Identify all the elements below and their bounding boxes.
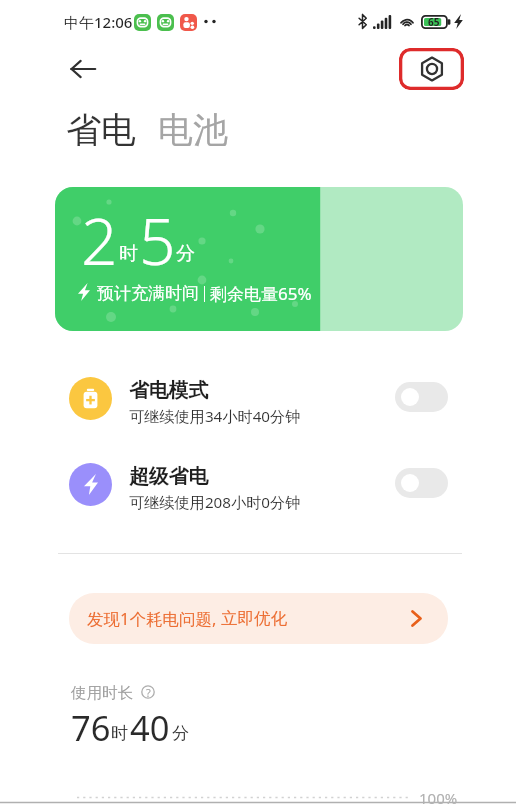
staticText: 可继续使用208小时0分钟 xyxy=(129,492,301,513)
button[interactable]: 发现1个耗电问题 xyxy=(69,593,448,644)
staticText: 40 xyxy=(130,704,170,751)
staticText: 时 xyxy=(119,242,138,266)
staticText: 76 xyxy=(71,704,111,751)
staticText: ? xyxy=(146,685,151,699)
button[interactable]: Back xyxy=(59,45,107,93)
staticText: 100% xyxy=(419,788,458,804)
staticText: 分 xyxy=(172,723,189,744)
button[interactable]: Toggle 超级省电 xyxy=(395,468,448,498)
button[interactable]: 省电模式 xyxy=(55,366,463,438)
staticText: 中午12:06 xyxy=(64,12,133,32)
staticText: , xyxy=(212,607,217,629)
staticText: 2 xyxy=(81,197,118,284)
button[interactable]: 电池 xyxy=(158,108,228,152)
staticText: 立即优化 xyxy=(221,608,287,629)
staticText: 5 xyxy=(139,197,176,284)
button[interactable]: Settings xyxy=(399,48,464,90)
button[interactable]: 省电 xyxy=(66,108,136,152)
staticText: 65 xyxy=(428,15,440,29)
button[interactable]: 2 xyxy=(55,187,463,331)
staticText: 发现1个耗电问题 xyxy=(87,607,212,630)
staticText: 可继续使用34小时40分钟 xyxy=(129,406,301,427)
staticText: 超级省电 xyxy=(129,464,209,489)
staticText: 剩余电量65% xyxy=(210,282,312,305)
button[interactable]: 超级省电 xyxy=(55,452,463,524)
staticText: 时 xyxy=(111,723,128,744)
staticText: 使用时长 xyxy=(71,683,133,703)
staticText: 预计充满时间 xyxy=(97,283,199,304)
staticText: 分 xyxy=(176,242,195,266)
staticText: 省电模式 xyxy=(129,378,209,403)
button[interactable]: Toggle 省电模式 xyxy=(395,382,448,412)
